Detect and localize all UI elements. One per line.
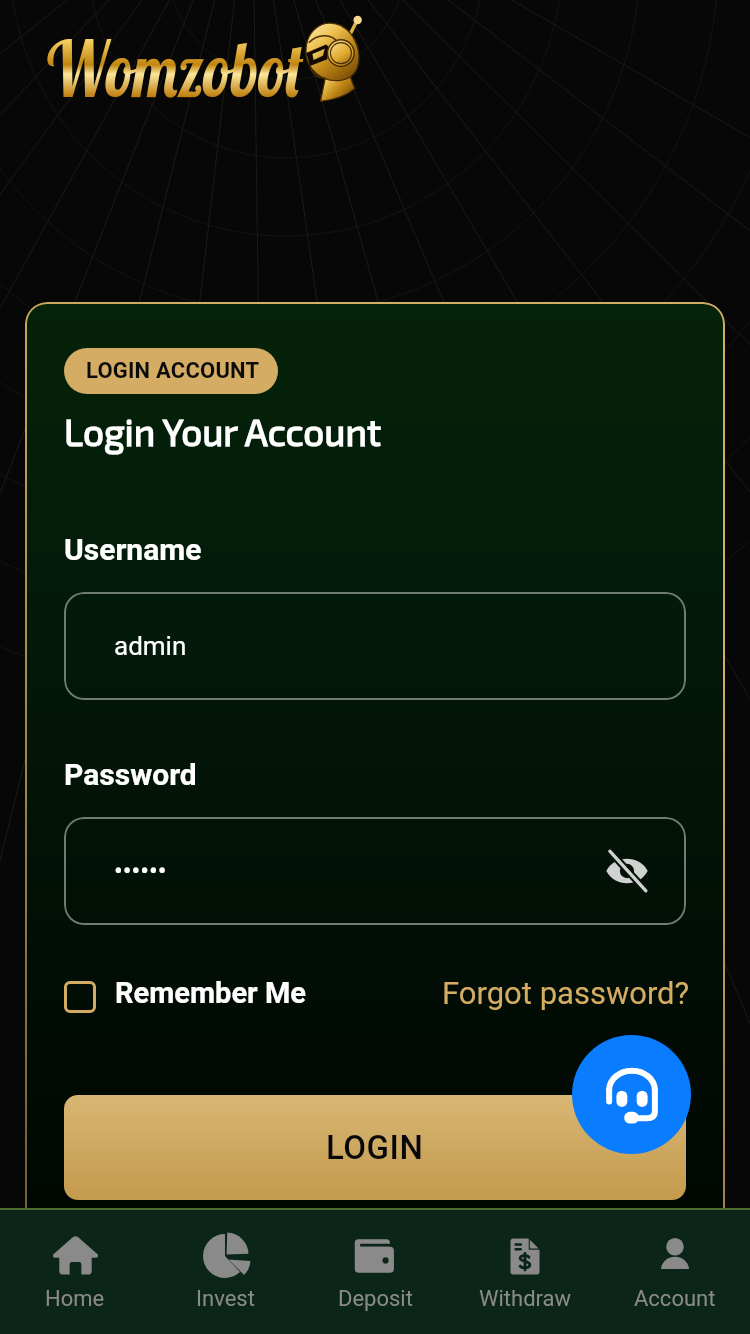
staticText: LOGIN ACCOUNT	[86, 358, 260, 384]
button[interactable]: Show password	[595, 839, 659, 903]
button[interactable]: LOGIN	[64, 1095, 686, 1200]
staticText: admin	[114, 631, 187, 661]
staticText: Remember Me	[115, 976, 306, 1010]
button[interactable]: Customer support	[572, 1035, 691, 1154]
staticText: Account	[634, 1286, 716, 1312]
staticText: LOGIN	[326, 1128, 424, 1167]
staticText: Deposit	[338, 1286, 413, 1312]
button[interactable]: Remember Me	[64, 976, 306, 1010]
button[interactable]: Withdraw	[450, 1210, 600, 1334]
button[interactable]: Account	[600, 1210, 750, 1334]
staticText: ••••••	[114, 856, 167, 886]
staticText: Withdraw	[479, 1286, 572, 1312]
staticText: Login Your Account	[64, 409, 381, 453]
staticText: Forgot password?	[442, 975, 690, 1011]
button[interactable]: Home	[0, 1210, 150, 1334]
staticText: Password	[64, 757, 197, 792]
staticText: Womzobot	[44, 21, 303, 116]
button[interactable]: admin	[64, 592, 686, 700]
staticText: Home	[45, 1286, 105, 1312]
staticText: Username	[64, 532, 202, 567]
button[interactable]: Invest	[150, 1210, 300, 1334]
staticText: Invest	[196, 1286, 255, 1312]
button[interactable]: Deposit	[300, 1210, 450, 1334]
button[interactable]: LOGIN ACCOUNT	[64, 348, 278, 394]
button[interactable]: ••••••	[64, 817, 686, 925]
button[interactable]: Forgot password?	[442, 975, 690, 1011]
